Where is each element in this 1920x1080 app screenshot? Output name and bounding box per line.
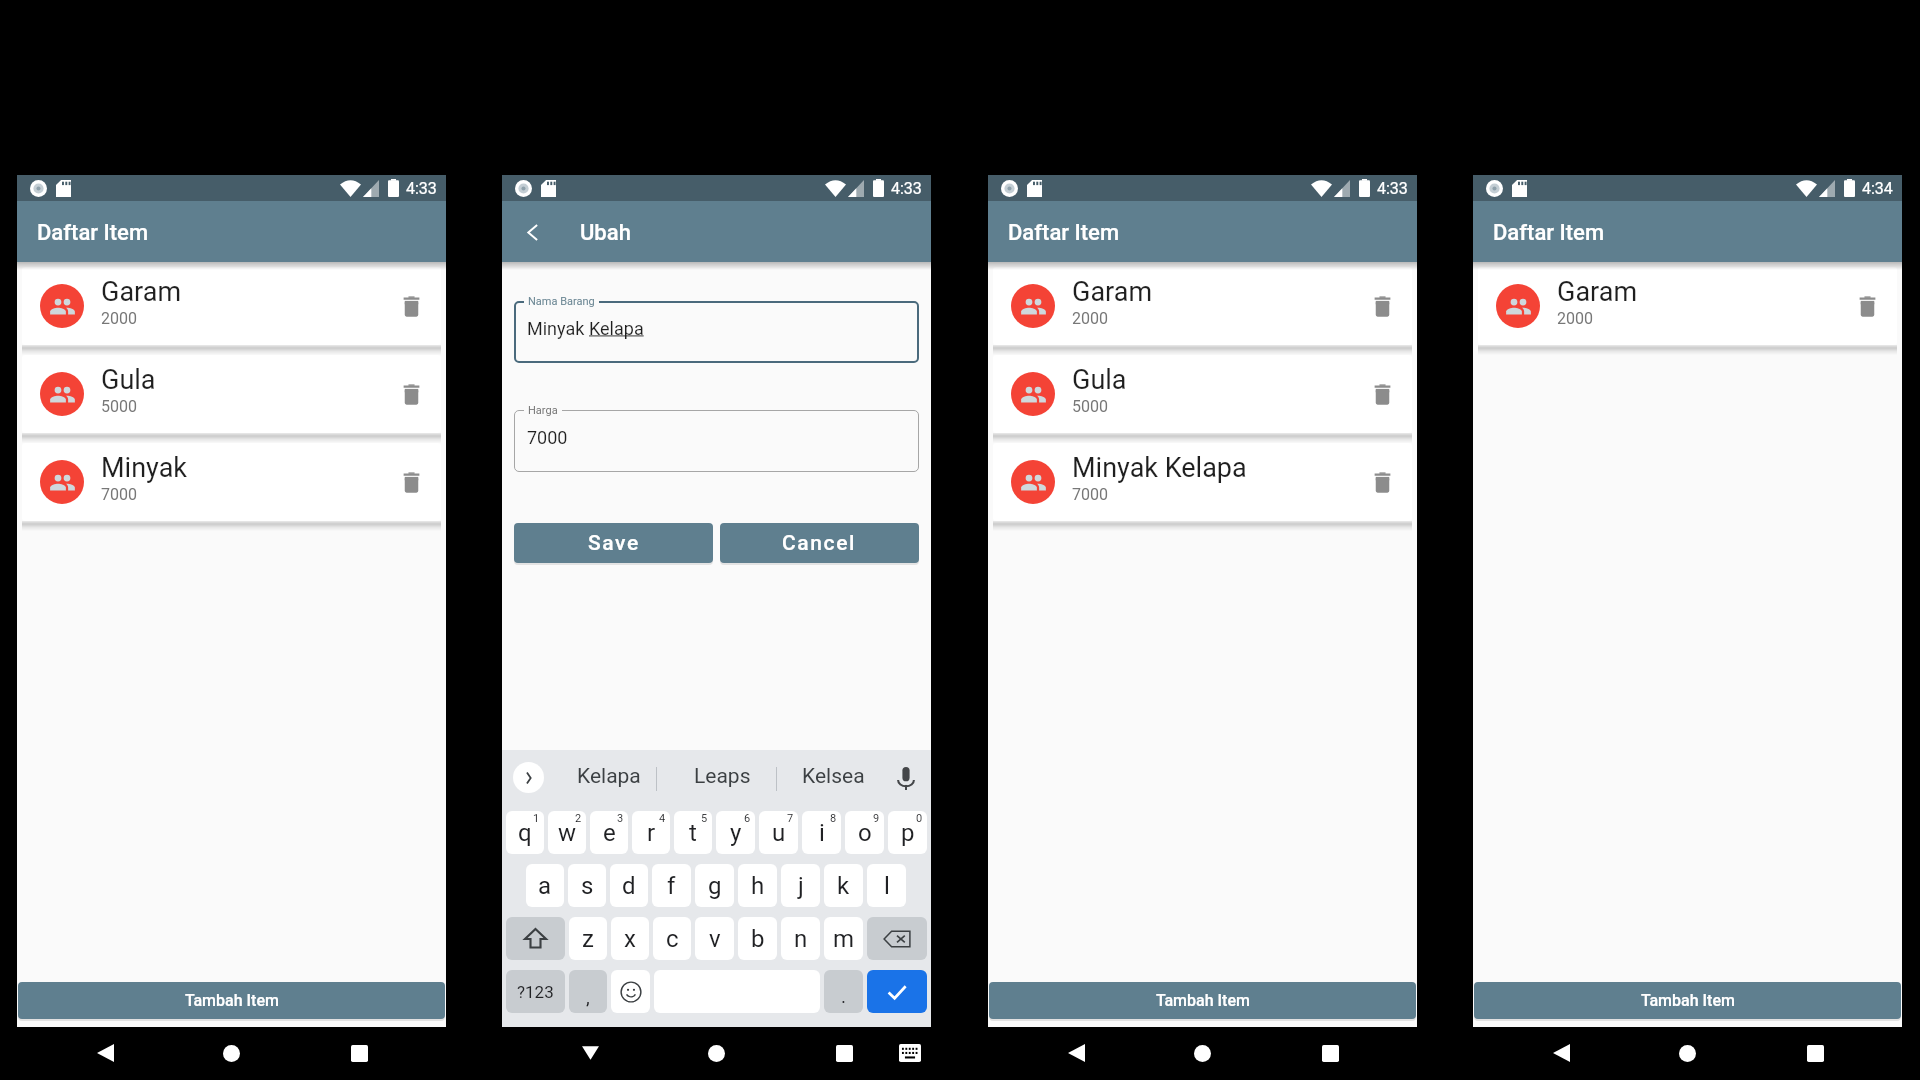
button[interactable]: t — [674, 811, 712, 854]
button[interactable]: Gula — [993, 355, 1412, 433]
button[interactable]: j — [781, 864, 820, 907]
staticText: Nama Barang — [528, 295, 595, 308]
button[interactable]: k — [824, 864, 863, 907]
button[interactable]: Minyak Kelapa — [993, 443, 1412, 521]
button[interactable]: z — [569, 917, 607, 960]
button[interactable]: Recent apps — [818, 1027, 870, 1079]
button[interactable]: Recent apps — [1789, 1027, 1841, 1079]
button[interactable]: Save — [514, 523, 713, 563]
button[interactable]: s — [568, 864, 606, 907]
button[interactable]: Garam — [1478, 267, 1897, 345]
button[interactable]: Recent apps — [333, 1027, 385, 1079]
button[interactable]: Home — [690, 1027, 742, 1079]
button[interactable]: Kelsea — [798, 759, 869, 794]
button[interactable]: Recent apps — [1304, 1027, 1356, 1079]
button[interactable]: b — [738, 917, 777, 960]
button[interactable]: Delete Garam — [1359, 283, 1405, 329]
staticText: Daftar Item — [37, 220, 149, 246]
button[interactable]: f — [652, 864, 691, 907]
button[interactable]: Back — [1535, 1027, 1587, 1079]
button[interactable]: o — [845, 811, 884, 854]
button[interactable]: Back — [1050, 1027, 1102, 1079]
staticText: t — [689, 819, 697, 847]
staticText: 8 — [830, 812, 837, 825]
button[interactable]: Tambah Item — [1474, 982, 1901, 1019]
button[interactable]: Backspace — [867, 917, 927, 960]
button[interactable]: Back — [79, 1027, 131, 1079]
staticText: r — [647, 819, 656, 847]
button[interactable]: w — [548, 811, 586, 854]
button[interactable]: Delete Minyak Kelapa — [1359, 459, 1405, 505]
staticText: 9 — [873, 812, 880, 825]
button[interactable]: a — [526, 864, 564, 907]
button[interactable]: Emoji — [611, 970, 650, 1013]
staticText: 7 — [787, 812, 794, 825]
staticText: Harga — [528, 404, 558, 417]
staticText: e — [603, 819, 616, 847]
button[interactable]: x — [611, 917, 649, 960]
button[interactable]: p — [888, 811, 927, 854]
button[interactable]: m — [824, 917, 863, 960]
staticText: m — [833, 925, 855, 953]
button[interactable]: Gula — [22, 355, 441, 433]
button[interactable]: Shift — [506, 917, 565, 960]
button[interactable]: g — [695, 864, 734, 907]
staticText: k — [837, 872, 850, 900]
button[interactable]: , — [569, 970, 607, 1013]
staticText: Cancel — [782, 531, 857, 556]
button[interactable]: Tambah Item — [989, 982, 1416, 1019]
button[interactable]: Tambah Item — [18, 982, 445, 1019]
staticText: Minyak — [527, 318, 589, 339]
button[interactable]: More suggestions — [513, 762, 544, 793]
button[interactable]: Delete Gula — [388, 371, 434, 417]
button[interactable]: ?123 — [506, 970, 565, 1013]
button[interactable]: Voice input — [891, 763, 921, 793]
button[interactable]: e — [590, 811, 628, 854]
button[interactable]: Delete Minyak — [388, 459, 434, 505]
button[interactable]: l — [867, 864, 906, 907]
button[interactable]: Hide keyboard — [564, 1027, 616, 1079]
button[interactable]: Leaps — [690, 759, 755, 794]
staticText: 4:33 — [1377, 179, 1408, 198]
button[interactable]: u — [759, 811, 798, 854]
button[interactable]: Home — [1176, 1027, 1228, 1079]
staticText: 4:33 — [891, 179, 922, 198]
button[interactable]: . — [824, 970, 863, 1013]
staticText: u — [772, 819, 786, 847]
button[interactable]: Home — [205, 1027, 257, 1079]
staticText: 2 — [575, 812, 582, 825]
button[interactable]: Back — [509, 209, 555, 255]
button[interactable]: r — [632, 811, 670, 854]
button[interactable]: Delete Garam — [388, 283, 434, 329]
button[interactable]: Garam — [22, 267, 441, 345]
button[interactable]: q — [506, 811, 544, 854]
staticText: Tambah Item — [185, 991, 279, 1010]
button[interactable]: y — [716, 811, 755, 854]
button[interactable]: n — [781, 917, 820, 960]
button[interactable]: Delete Gula — [1359, 371, 1405, 417]
button[interactable]: Delete Garam — [1844, 283, 1890, 329]
button[interactable]: Cancel — [720, 523, 919, 563]
button[interactable]: Minyak — [22, 443, 441, 521]
staticText: . — [841, 985, 847, 1007]
staticText: 4:34 — [1862, 179, 1893, 198]
button[interactable]: c — [653, 917, 691, 960]
button[interactable]: Home — [1661, 1027, 1713, 1079]
button[interactable]: i — [802, 811, 841, 854]
button[interactable]: Garam — [993, 267, 1412, 345]
staticText: Tambah Item — [1641, 991, 1735, 1010]
button[interactable]: Kelapa — [573, 759, 645, 794]
staticText: y — [730, 819, 742, 847]
button[interactable]: Done — [867, 970, 927, 1013]
button[interactable]: h — [738, 864, 777, 907]
staticText: i — [819, 819, 825, 847]
button[interactable]: d — [610, 864, 648, 907]
button[interactable]: Switch keyboard — [884, 1027, 936, 1079]
staticText: Minyak — [101, 452, 187, 484]
staticText: z — [582, 925, 594, 953]
staticText: 5 — [701, 812, 708, 825]
staticText: Daftar Item — [1008, 220, 1120, 246]
button[interactable]: v — [695, 917, 734, 960]
staticText: f — [667, 872, 676, 900]
